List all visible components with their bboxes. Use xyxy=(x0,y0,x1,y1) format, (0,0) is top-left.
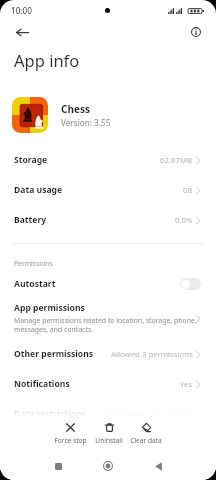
button[interactable]: App permissions xyxy=(0,297,216,339)
staticText: App permissions xyxy=(14,302,85,314)
staticText: Data usage xyxy=(14,184,63,196)
staticText: 0B xyxy=(183,185,193,196)
button[interactable]: Back xyxy=(11,21,33,43)
staticText: Autostart xyxy=(14,278,56,290)
staticText: Force stop xyxy=(54,436,87,445)
staticText: Permissions xyxy=(14,259,53,268)
button[interactable]: Other permissions xyxy=(0,339,216,369)
button[interactable]: About app xyxy=(185,21,207,43)
button[interactable]: Battery xyxy=(0,205,216,235)
staticText: Chess xyxy=(61,102,90,116)
staticText: 0.0% xyxy=(175,215,193,226)
staticText: App info xyxy=(14,49,80,71)
button[interactable]: Autostart toggle xyxy=(180,278,201,290)
button[interactable]: Data restrictions xyxy=(0,399,216,429)
staticText: Yes xyxy=(180,379,193,390)
button[interactable]: Uninstall xyxy=(93,423,125,445)
staticText: Allowed 3 permissions xyxy=(111,349,193,360)
button[interactable]: Storage xyxy=(0,145,216,175)
staticText: 62.87MB xyxy=(160,155,193,166)
button[interactable]: Notifications xyxy=(0,369,216,399)
button[interactable]: Recent apps xyxy=(47,454,69,478)
staticText: 10:00 xyxy=(11,5,32,16)
staticText: Storage xyxy=(14,154,48,166)
button[interactable]: Data usage xyxy=(0,175,216,205)
button[interactable]: Autostart xyxy=(0,271,216,297)
staticText: Notifications xyxy=(14,378,70,390)
button[interactable]: Home xyxy=(97,454,119,478)
staticText: Manage permissions related to location, … xyxy=(14,316,198,334)
button[interactable]: Force stop xyxy=(52,423,89,445)
staticText: Other permissions xyxy=(14,348,94,360)
staticText: Data restrictions xyxy=(14,408,86,420)
staticText: Clear data xyxy=(130,436,162,445)
staticText: Uninstall xyxy=(95,436,123,445)
button[interactable]: Clear data xyxy=(128,423,164,445)
staticText: Battery xyxy=(14,214,47,226)
staticText: Version: 3.55 xyxy=(61,117,111,128)
button[interactable]: Back xyxy=(147,454,169,478)
